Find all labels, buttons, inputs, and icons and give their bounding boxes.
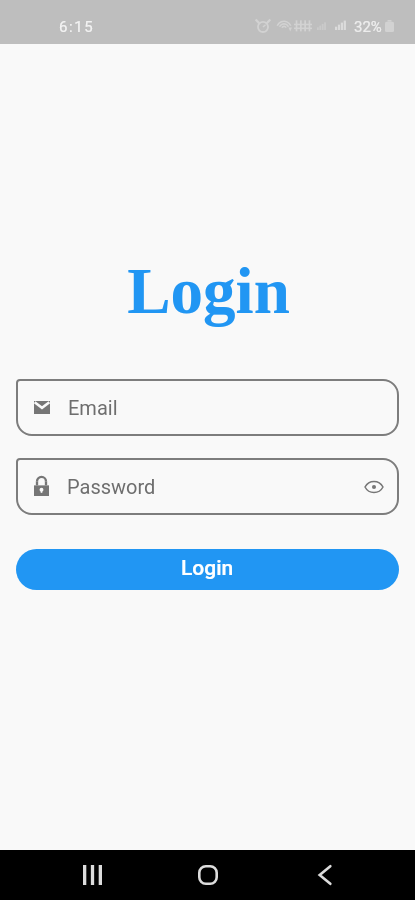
- button[interactable]: Email: [16, 379, 399, 436]
- staticText: Login: [1, 255, 415, 327]
- button[interactable]: Show password: [357, 470, 390, 503]
- staticText: Email: [68, 396, 118, 419]
- button[interactable]: Login: [16, 549, 399, 590]
- button[interactable]: Back: [298, 850, 352, 900]
- button[interactable]: Password: [16, 458, 399, 515]
- staticText: 6:15: [59, 18, 95, 36]
- button[interactable]: Recents: [65, 850, 119, 900]
- staticText: Password: [67, 475, 156, 498]
- staticText: Login: [181, 556, 234, 581]
- staticText: 32%: [354, 18, 382, 36]
- button[interactable]: Home: [181, 850, 235, 900]
